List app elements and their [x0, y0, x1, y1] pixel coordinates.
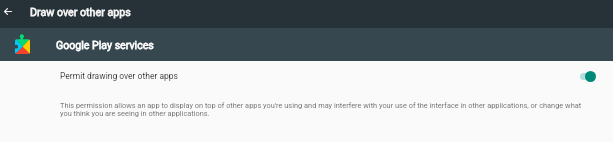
staticText: Draw over other apps [30, 6, 131, 19]
staticText: Permit drawing over other apps [60, 71, 178, 81]
button[interactable]: Navigate up [0, 0, 15, 23]
staticText: Google Play services [56, 39, 154, 51]
button[interactable]: Permit drawing over other apps [0, 61, 613, 93]
staticText: This permission allows an app to display… [60, 101, 590, 118]
